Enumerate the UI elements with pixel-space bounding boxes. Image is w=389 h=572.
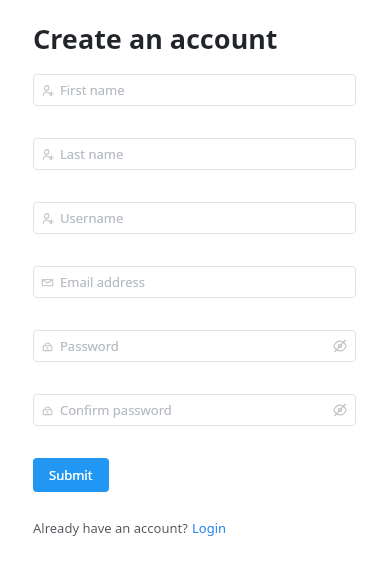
staticText: Last name	[60, 145, 124, 163]
staticText: Username	[60, 209, 124, 227]
button[interactable]: Confirm password	[33, 394, 356, 426]
staticText: Create an account	[33, 20, 278, 57]
button[interactable]: Email address	[33, 266, 356, 298]
staticText: Confirm password	[60, 401, 172, 419]
staticText: Submit	[49, 466, 93, 484]
button[interactable]: Password	[33, 330, 356, 362]
button[interactable]: Toggle password visibility	[332, 338, 348, 354]
staticText: Already have an account?	[33, 519, 192, 537]
staticText: Password	[60, 337, 119, 355]
button[interactable]: Last name	[33, 138, 356, 170]
staticText: Email address	[60, 273, 145, 291]
button[interactable]: Login	[192, 519, 227, 537]
button[interactable]: First name	[33, 74, 356, 106]
staticText: First name	[60, 81, 125, 99]
button[interactable]: Submit	[33, 458, 109, 492]
button[interactable]: Toggle password visibility	[332, 402, 348, 418]
staticText: Login	[192, 519, 227, 537]
button[interactable]: Username	[33, 202, 356, 234]
